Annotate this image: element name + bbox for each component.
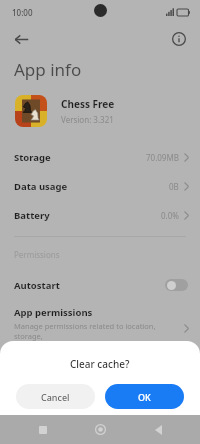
button[interactable]: Autostart [0,270,200,300]
button[interactable]: Back [143,415,173,444]
staticText: Battery [14,209,50,222]
staticText: 0.0% [161,210,179,221]
staticText: Autostart [14,279,60,292]
staticText: Chess Free [61,97,115,111]
staticText: Manage permissions related to location, … [14,321,178,351]
staticText: Version: 3.321 [61,114,114,125]
button[interactable]: Cancel [16,384,95,409]
button[interactable]: App details [166,26,192,52]
staticText: 70.09MB [146,152,179,163]
staticText: App info [14,58,82,81]
staticText: Cancel [41,391,70,403]
button[interactable]: Home [85,415,115,444]
staticText: Storage [14,151,51,164]
button[interactable]: OK [105,384,184,409]
staticText: 10:00 [12,7,33,18]
staticText: App permissions [14,306,93,319]
button[interactable]: Recents [28,415,58,444]
button[interactable]: Back [8,26,34,52]
staticText: Data usage [14,180,68,193]
button[interactable]: Chess Free [0,95,200,127]
button[interactable]: Storage [0,143,200,172]
button[interactable]: Battery [0,201,200,230]
staticText: Clear cache? [70,357,130,371]
staticText: 0B [169,181,179,192]
button[interactable]: Data usage [0,172,200,201]
staticText: OK [138,391,151,403]
button[interactable]: App permissions [0,300,200,357]
staticText: Permissions [14,249,60,260]
